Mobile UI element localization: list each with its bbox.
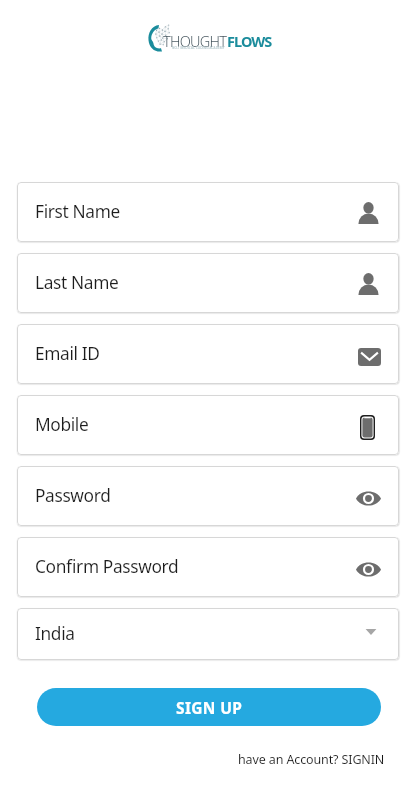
- staticText: FLOWS: [227, 31, 272, 51]
- button[interactable]: India: [17, 608, 399, 660]
- other: Person: [358, 202, 379, 224]
- staticText: THOUGHT: [163, 31, 227, 51]
- other: Mobile: [360, 415, 375, 440]
- other: Person: [358, 273, 379, 295]
- staticText: Confirm Password: [35, 555, 179, 579]
- staticText: have an Account? SIGNIN: [238, 751, 385, 768]
- other: Email: [358, 348, 381, 366]
- button[interactable]: have an Account? SIGNIN: [238, 751, 385, 768]
- staticText: India: [35, 622, 75, 646]
- button[interactable]: SIGN UP: [37, 688, 381, 726]
- staticText: NO.1 MEDICAL CODING ACADEMY: [172, 46, 225, 50]
- staticText: Email ID: [35, 342, 100, 366]
- other: Select country: [365, 627, 377, 637]
- button[interactable]: Email ID: [17, 324, 399, 384]
- staticText: SIGN UP: [176, 697, 243, 718]
- staticText: Mobile: [35, 413, 89, 437]
- button[interactable]: Mobile: [17, 395, 399, 455]
- staticText: Password: [35, 484, 111, 508]
- button[interactable]: First Name: [17, 182, 399, 242]
- staticText: First Name: [35, 200, 120, 224]
- button[interactable]: Last Name: [17, 253, 399, 313]
- other: Show password: [356, 491, 381, 506]
- button[interactable]: Password: [17, 466, 399, 526]
- staticText: Last Name: [35, 271, 119, 295]
- other: Show password: [356, 562, 381, 577]
- button[interactable]: Confirm Password: [17, 537, 399, 597]
